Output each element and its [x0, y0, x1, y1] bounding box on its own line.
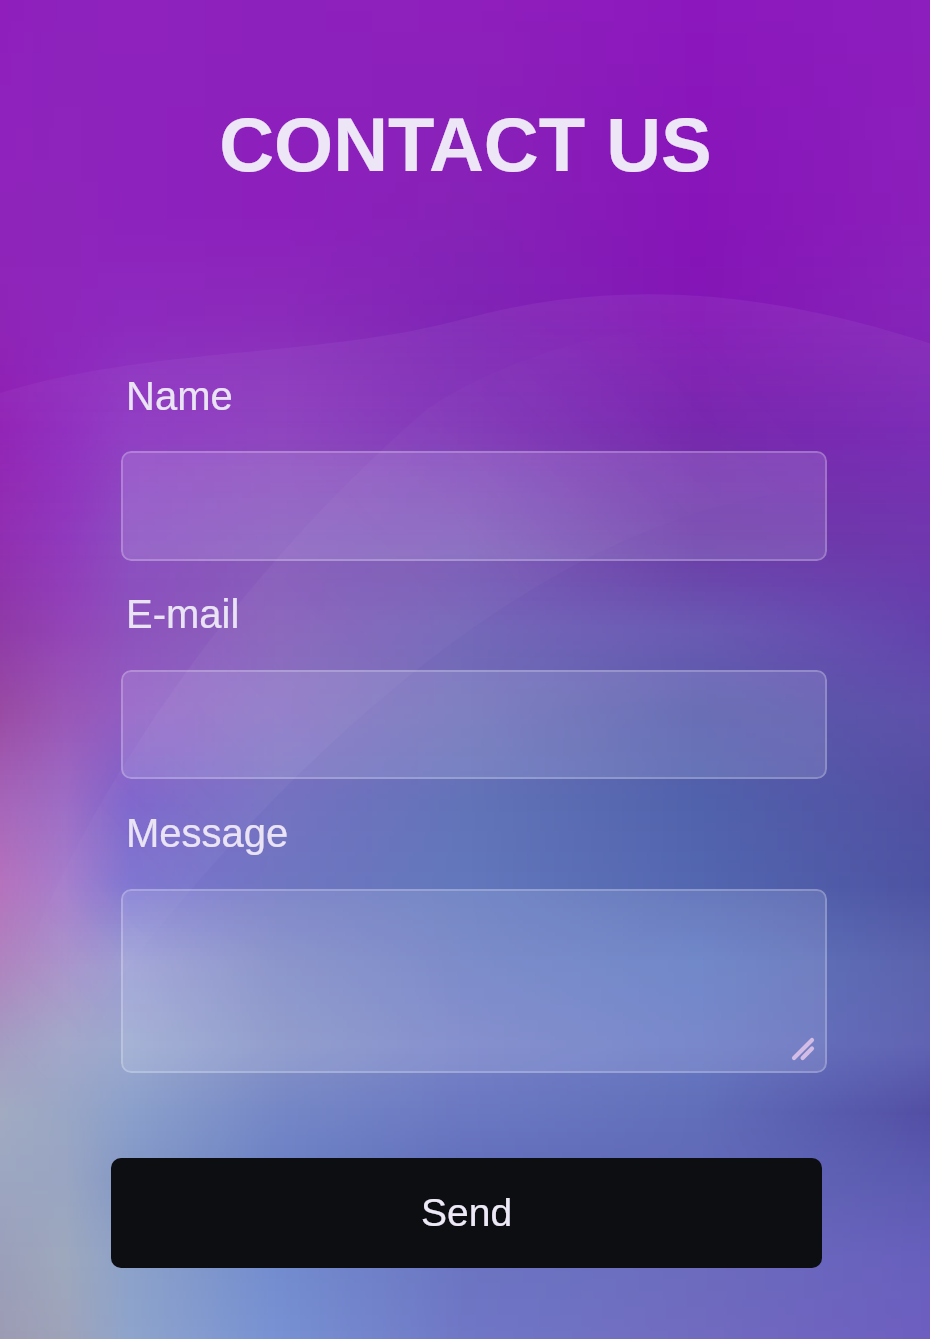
- button[interactable]: [121, 451, 827, 561]
- staticText: Send: [421, 1191, 513, 1235]
- button[interactable]: [121, 889, 827, 1073]
- button[interactable]: [121, 670, 827, 779]
- staticText: Name: [126, 374, 233, 419]
- staticText: Message: [126, 811, 289, 856]
- staticText: CONTACT US: [219, 102, 712, 187]
- button[interactable]: Send: [111, 1158, 822, 1268]
- staticText: E-mail: [126, 592, 240, 637]
